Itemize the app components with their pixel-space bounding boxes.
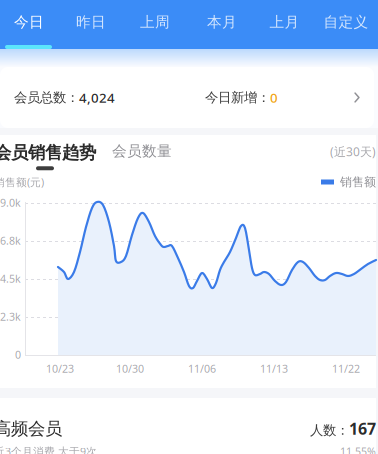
staticText: 近3个月消费 大于9次 bbox=[0, 444, 97, 454]
staticText: 0 bbox=[15, 347, 21, 362]
staticText: 2.3k bbox=[0, 309, 21, 324]
staticText: 销售额(元) bbox=[0, 175, 44, 189]
button[interactable]: 本月 bbox=[193, 0, 251, 44]
staticText: 今日新增： bbox=[205, 89, 270, 106]
staticText: 9.0k bbox=[0, 195, 21, 210]
staticText: 11.55% bbox=[340, 444, 376, 454]
staticText: 本月 bbox=[207, 13, 237, 31]
staticText: 6.8k bbox=[0, 233, 21, 248]
staticText: 今日 bbox=[14, 13, 44, 31]
button[interactable]: 会员销售趋势 bbox=[0, 142, 96, 170]
staticText: 10/30 bbox=[116, 361, 144, 376]
button[interactable]: 会员总数： bbox=[0, 67, 374, 128]
staticText: 会员数量 bbox=[112, 142, 172, 160]
button[interactable]: 上周 bbox=[126, 0, 184, 44]
staticText: 167 bbox=[349, 418, 376, 439]
staticText: 高频会员 bbox=[0, 418, 62, 439]
staticText: 11/06 bbox=[188, 361, 216, 376]
staticText: 11/22 bbox=[332, 361, 360, 376]
button[interactable]: 今日 bbox=[0, 0, 58, 44]
staticText: 上月 bbox=[269, 13, 299, 31]
button[interactable]: 自定义 bbox=[317, 0, 375, 44]
staticText: 10/23 bbox=[46, 361, 74, 376]
staticText: (近30天) bbox=[330, 143, 376, 159]
staticText: 11/13 bbox=[260, 361, 288, 376]
staticText: 会员总数： bbox=[14, 89, 79, 106]
staticText: 会员销售趋势 bbox=[0, 142, 96, 163]
button[interactable]: 上月 bbox=[255, 0, 313, 44]
staticText: 昨日 bbox=[76, 13, 106, 31]
staticText: 销售额 bbox=[340, 175, 376, 189]
staticText: 上周 bbox=[140, 13, 170, 31]
staticText: 4.5k bbox=[0, 271, 21, 286]
button[interactable]: 高频会员 bbox=[0, 398, 378, 454]
button[interactable]: 昨日 bbox=[62, 0, 120, 44]
staticText: 自定义 bbox=[323, 13, 368, 31]
staticText: 人数： bbox=[310, 422, 349, 439]
staticText: 4,024 bbox=[79, 89, 115, 106]
button[interactable]: 会员数量 bbox=[112, 142, 172, 161]
staticText: 0 bbox=[270, 89, 278, 106]
